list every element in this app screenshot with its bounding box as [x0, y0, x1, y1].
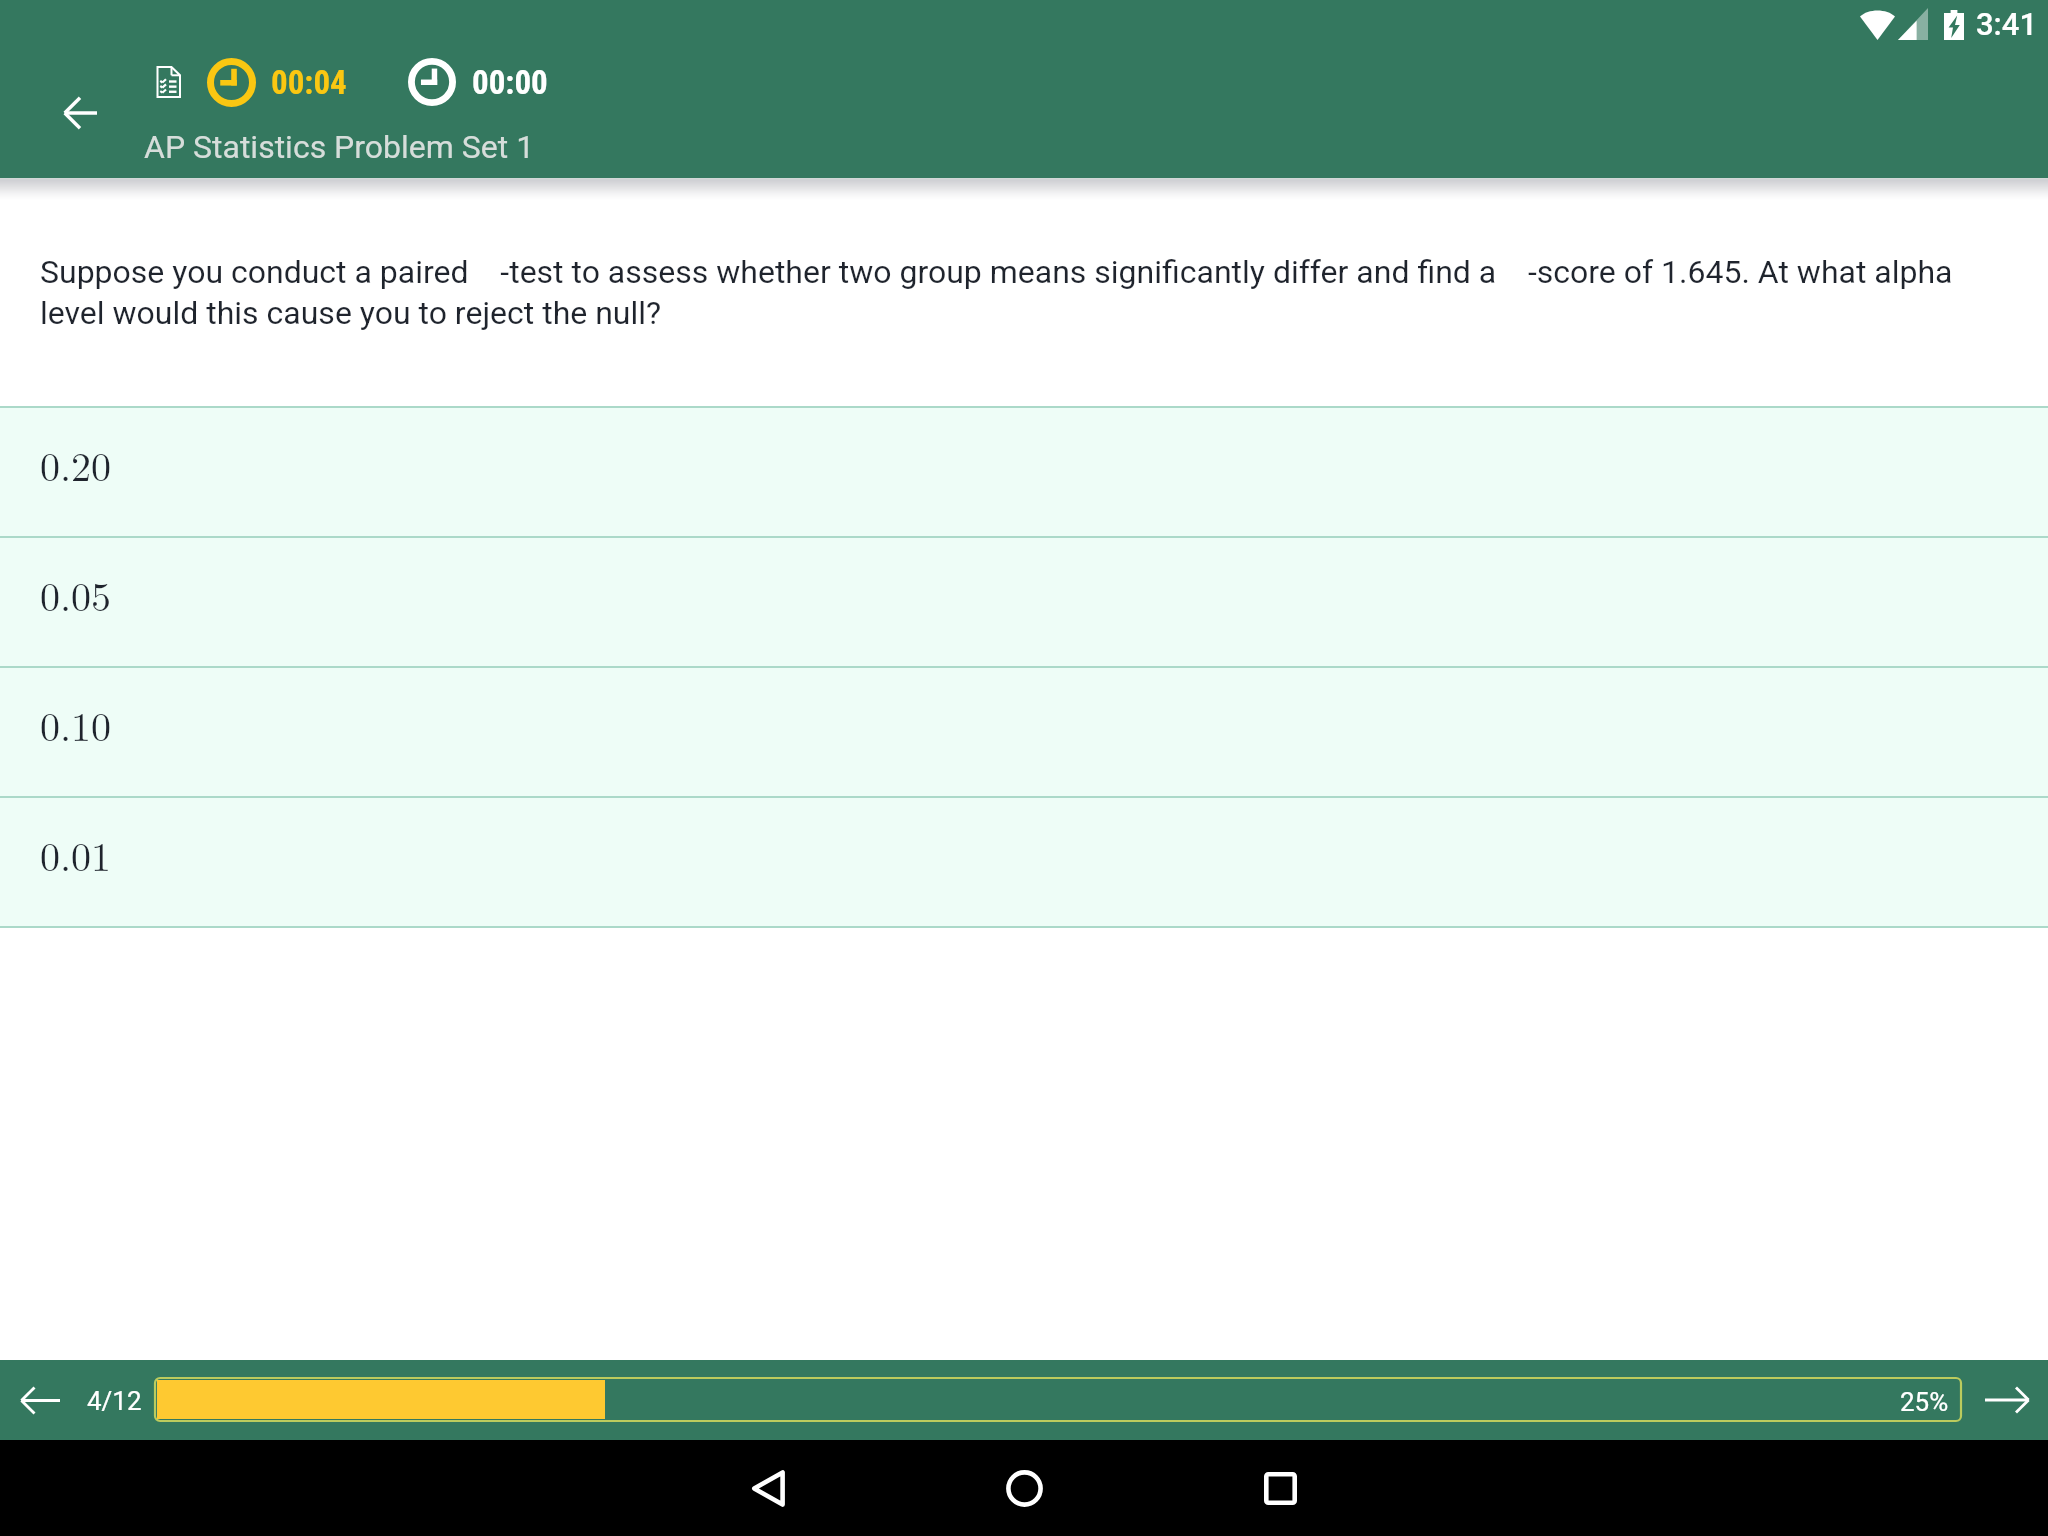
- button[interactable]: Back: [708, 1440, 828, 1536]
- staticText: AP Statistics Problem Set 1: [144, 128, 535, 166]
- button[interactable]: Previous question: [0, 1370, 80, 1430]
- button[interactable]: Back: [36, 69, 124, 157]
- button[interactable]: 0.10: [0, 668, 2048, 796]
- staticText: 0.05: [40, 566, 112, 623]
- staticText: 0.20: [40, 436, 112, 493]
- staticText: 25%: [1900, 1387, 1949, 1417]
- staticText: 0.01: [40, 826, 112, 883]
- button[interactable]: Home: [964, 1440, 1084, 1536]
- staticText: 3:41: [1976, 6, 2038, 42]
- staticText: 4/12: [87, 1386, 142, 1416]
- button[interactable]: Next question: [1968, 1370, 2046, 1430]
- button[interactable]: 0.20: [0, 408, 2048, 536]
- staticText: 00:00: [472, 63, 548, 102]
- button[interactable]: 0.05: [0, 538, 2048, 666]
- button[interactable]: Recent apps: [1220, 1440, 1340, 1536]
- staticText: 0.10: [40, 696, 112, 753]
- staticText: 00:04: [271, 63, 347, 102]
- button[interactable]: 0.01: [0, 798, 2048, 926]
- staticText: Suppose you conduct a paired -test to as…: [40, 251, 2004, 333]
